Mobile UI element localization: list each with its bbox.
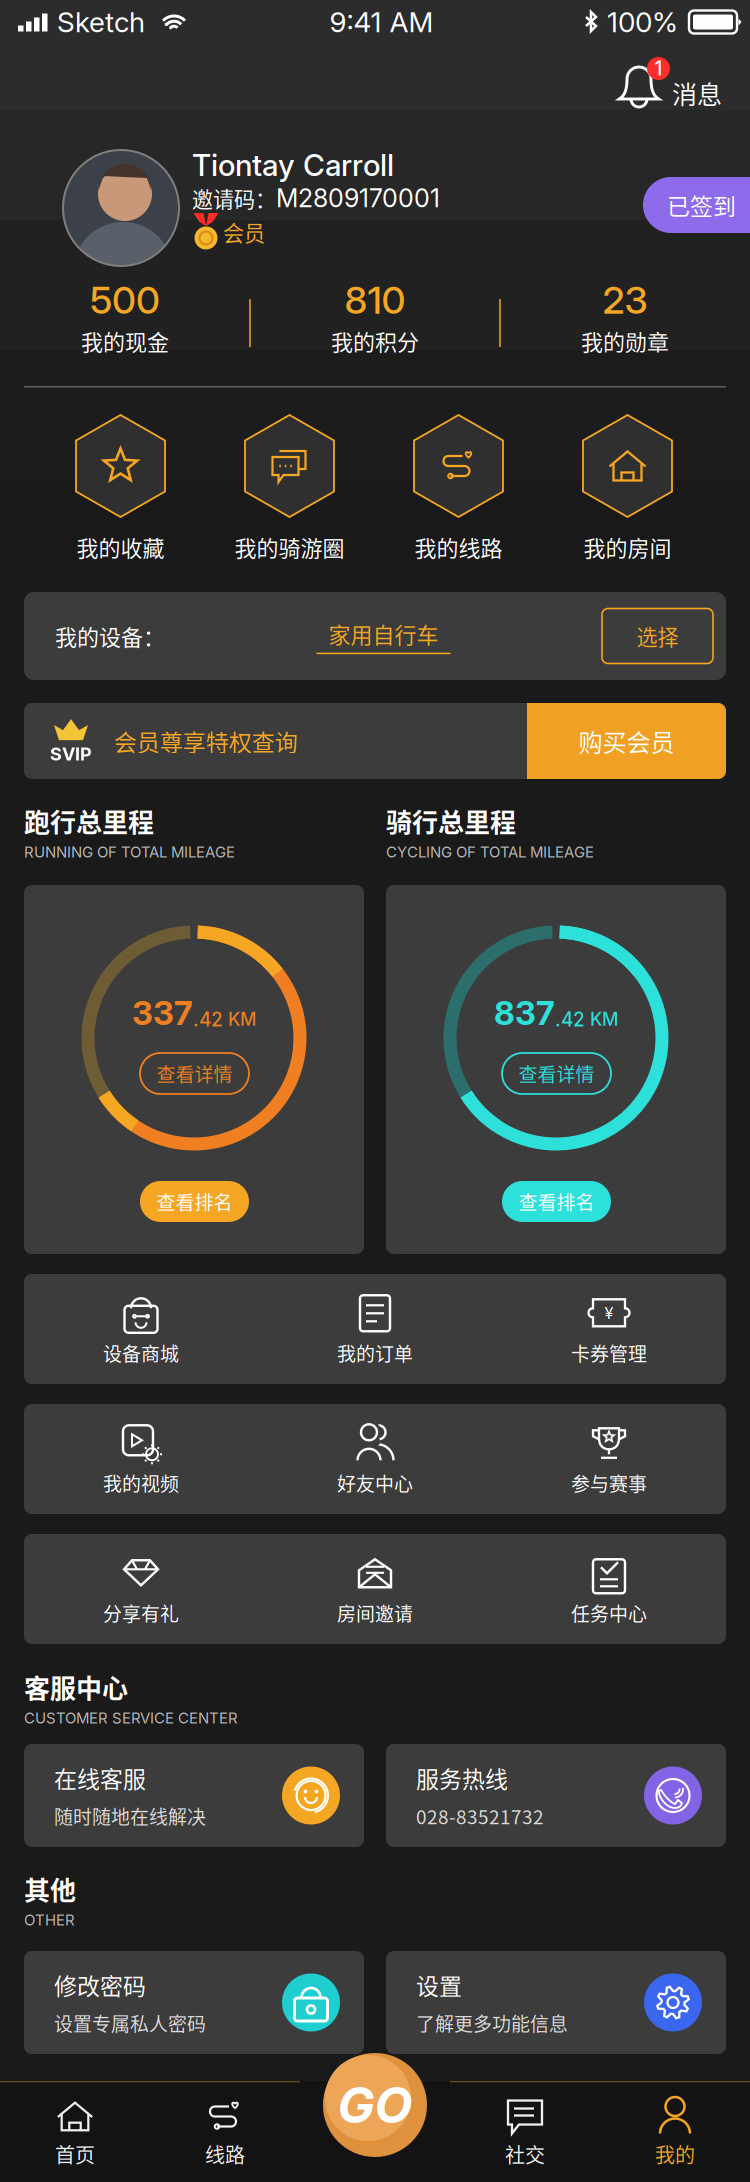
staticText: 骑行总里程 — [386, 802, 516, 840]
staticText: 我的勋章 — [581, 325, 669, 357]
staticText: 1 — [654, 57, 662, 80]
staticText: 9:41 AM — [329, 5, 433, 39]
staticText: 任务中心 — [571, 1599, 647, 1627]
button[interactable]: 我的视频 — [24, 1404, 258, 1514]
staticText: 随时随地在线解决 — [54, 1802, 206, 1830]
staticText: 购买会员 — [578, 724, 674, 758]
staticText: 我的收藏 — [76, 531, 164, 563]
button[interactable]: 1 — [614, 55, 744, 117]
staticText: 好友中心 — [337, 1469, 413, 1497]
staticText: 消息 — [672, 75, 722, 111]
staticText: 房间邀请 — [337, 1599, 413, 1627]
button[interactable]: 查看排名 — [502, 1181, 611, 1222]
staticText: 了解更多功能信息 — [416, 2009, 568, 2037]
staticText: KM — [585, 1008, 618, 1030]
button[interactable]: 我的 — [600, 2081, 750, 2182]
button[interactable]: GO — [323, 2053, 427, 2157]
staticText: 我的线路 — [414, 531, 502, 563]
button[interactable]: 已签到 — [643, 177, 750, 233]
button[interactable]: 设备商城 — [24, 1274, 258, 1384]
button[interactable]: 任务中心 — [492, 1534, 726, 1644]
staticText: 810 — [344, 277, 405, 323]
staticText: 028-83521732 — [416, 1802, 544, 1830]
button[interactable]: 分享有礼 — [24, 1534, 258, 1644]
button[interactable]: 查看详情 — [140, 1053, 249, 1094]
staticText: ¥ — [604, 1304, 613, 1323]
button[interactable]: 家用自行车 — [313, 618, 453, 654]
button[interactable]: 首页 — [0, 2081, 150, 2182]
staticText: CYCLING OF TOTAL MILEAGE — [386, 843, 594, 861]
staticText: 我的订单 — [337, 1339, 413, 1367]
staticText: 查看详情 — [156, 1060, 232, 1087]
button[interactable]: 查看排名 — [140, 1181, 249, 1222]
staticText: 500 — [90, 277, 160, 323]
staticText: 我的积分 — [331, 325, 419, 357]
staticText: RUNNING OF TOTAL MILEAGE — [24, 843, 235, 861]
staticText: KM — [223, 1008, 256, 1030]
staticText: 客服中心 — [24, 1668, 128, 1706]
staticText: 修改密码 — [54, 1968, 146, 2001]
staticText: CUSTOMER SERVICE CENTER — [24, 1709, 238, 1727]
staticText: 837 — [494, 993, 555, 1033]
staticText: 卡券管理 — [571, 1339, 647, 1367]
staticText: 我的 — [655, 2139, 695, 2168]
staticText: 社交 — [505, 2139, 545, 2168]
button[interactable]: 线路 — [150, 2081, 300, 2182]
staticText: .42 — [193, 1008, 223, 1031]
button[interactable]: 我的房间 — [543, 413, 712, 561]
staticText: 分享有礼 — [103, 1599, 179, 1627]
button[interactable]: 房间邀请 — [258, 1534, 492, 1644]
staticText: 首页 — [55, 2139, 95, 2168]
staticText: Tiontay Carroll — [192, 147, 394, 183]
button[interactable]: 参与赛事 — [492, 1404, 726, 1514]
staticText: 其他 — [24, 1870, 76, 1908]
button[interactable]: 我的收藏 — [36, 413, 205, 561]
button[interactable]: 选择 — [602, 608, 713, 663]
staticText: 会员尊享特权查询 — [114, 724, 298, 758]
button[interactable]: 社交 — [450, 2081, 600, 2182]
staticText: 邀请码： — [192, 183, 276, 213]
button[interactable]: 购买会员 — [527, 703, 726, 779]
button[interactable]: 我的线路 — [374, 413, 543, 561]
staticText: 参与赛事 — [571, 1469, 647, 1497]
staticText: 100% — [607, 5, 678, 39]
staticText: M2809170001 — [276, 183, 440, 213]
staticText: SVIP — [50, 743, 92, 765]
button[interactable]: 好友中心 — [258, 1404, 492, 1514]
staticText: 设置 — [416, 1968, 462, 2001]
staticText: 跑行总里程 — [24, 802, 154, 840]
staticText: 会员 — [223, 217, 265, 247]
staticText: .42 — [555, 1008, 585, 1031]
staticText: Sketch — [57, 5, 145, 39]
button[interactable]: 查看详情 — [502, 1053, 611, 1094]
button[interactable]: 在线客服 — [24, 1744, 364, 1847]
button[interactable]: 修改密码 — [24, 1951, 364, 2054]
staticText: 查看排名 — [518, 1188, 594, 1215]
staticText: 在线客服 — [54, 1761, 146, 1794]
staticText: 已签到 — [667, 188, 736, 222]
staticText: 查看详情 — [518, 1060, 594, 1087]
button[interactable]: ¥ — [492, 1274, 726, 1384]
staticText: 线路 — [205, 2139, 245, 2168]
staticText: 服务热线 — [416, 1761, 508, 1794]
button[interactable]: 设置 — [386, 1951, 726, 2054]
staticText: GO — [337, 2075, 412, 2135]
staticText: 设置专属私人密码 — [54, 2009, 206, 2037]
staticText: 我的设备： — [55, 620, 165, 652]
button[interactable]: 我的骑游圈 — [205, 413, 374, 561]
staticText: 我的现金 — [81, 325, 169, 357]
staticText: 337 — [132, 993, 193, 1033]
button[interactable]: 我的订单 — [258, 1274, 492, 1384]
staticText: 我的视频 — [103, 1469, 179, 1497]
staticText: 家用自行车 — [328, 618, 438, 650]
staticText: 设备商城 — [103, 1339, 179, 1367]
staticText: 查看排名 — [156, 1188, 232, 1215]
staticText: 23 — [602, 277, 647, 323]
staticText: 我的房间 — [583, 531, 671, 563]
staticText: OTHER — [24, 1911, 75, 1929]
button[interactable]: 服务热线 — [386, 1744, 726, 1847]
staticText: 我的骑游圈 — [234, 531, 344, 563]
staticText: 选择 — [636, 621, 678, 651]
